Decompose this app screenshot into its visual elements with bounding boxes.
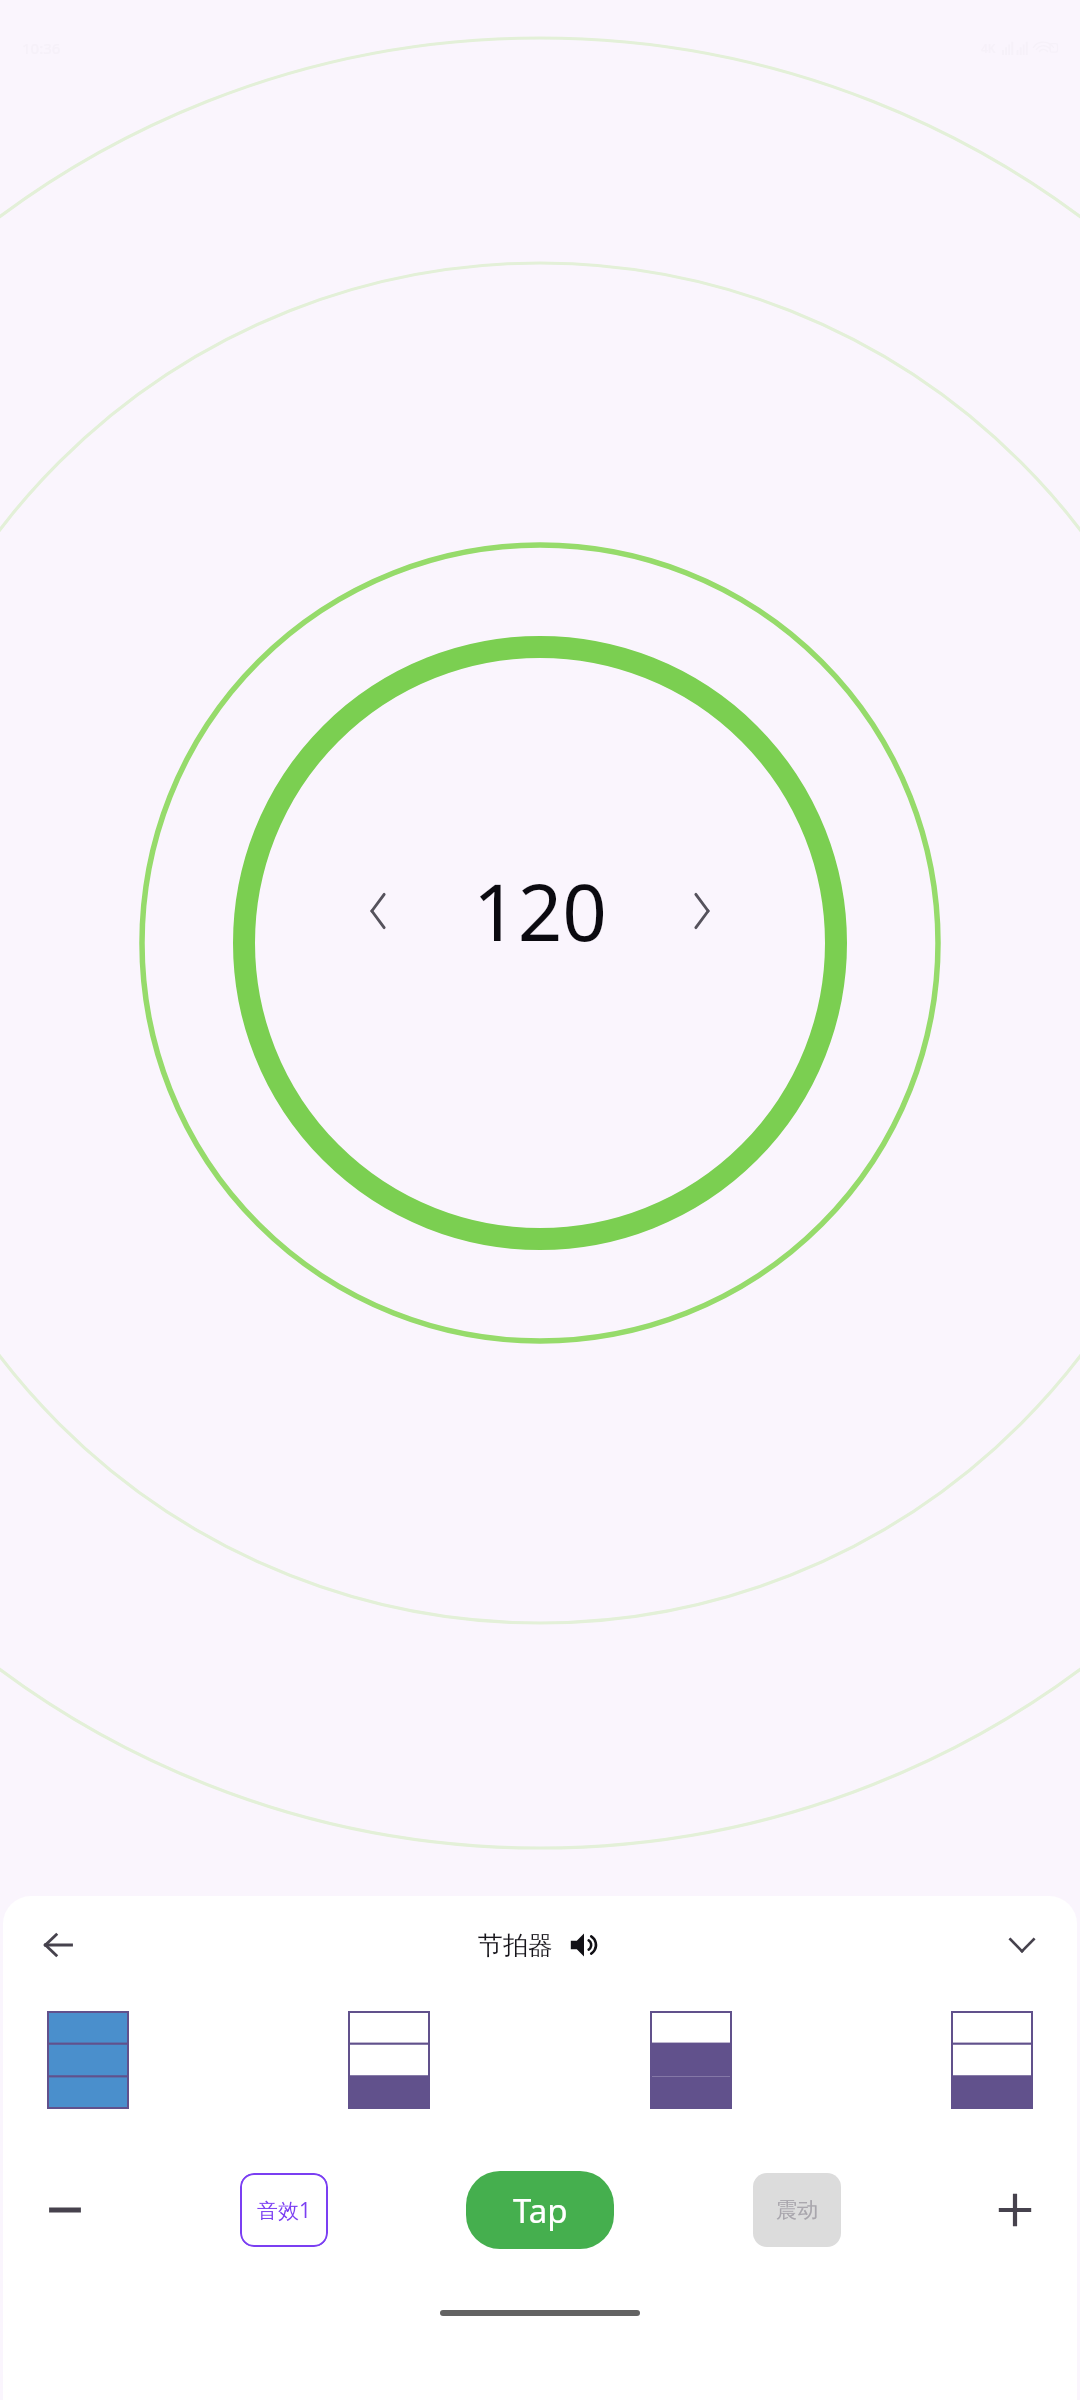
staticText: 120 (473, 858, 607, 964)
staticText: 节拍器 (478, 1930, 553, 1961)
button[interactable]: Beat level (650, 2011, 732, 2109)
button[interactable]: Back (29, 1916, 87, 1974)
button[interactable]: Tap (466, 2171, 614, 2249)
button[interactable]: Decrease tempo (341, 874, 415, 948)
staticText: 震动 (776, 2197, 818, 2223)
button[interactable]: Increase tempo (665, 874, 739, 948)
button[interactable]: Decrease (29, 2174, 101, 2246)
button[interactable]: Collapse (993, 1916, 1051, 1974)
button[interactable]: Beat level (951, 2011, 1033, 2109)
button[interactable]: Beat level (348, 2011, 430, 2109)
button[interactable]: Sound on (567, 1928, 601, 1962)
button[interactable]: 震动 (753, 2173, 841, 2247)
button[interactable]: Beat level (47, 2011, 129, 2109)
button[interactable]: 音效1 (240, 2173, 328, 2247)
button[interactable]: Increase (979, 2174, 1051, 2246)
staticText: Tap (513, 2188, 568, 2233)
staticText: 音效1 (257, 2196, 312, 2225)
